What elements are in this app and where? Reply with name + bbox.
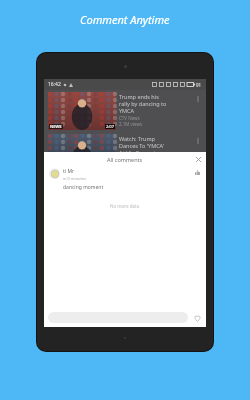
staticText: Trump ends his — [119, 93, 159, 100]
staticText: Watch: Trump — [119, 135, 155, 142]
staticText: NEWS — [50, 166, 62, 171]
staticText: YMCA — [119, 107, 135, 114]
button[interactable]: Like — [193, 168, 201, 176]
staticText: Dances To 'YMCA' — [119, 142, 164, 149]
staticText: No more data — [110, 203, 140, 209]
staticText: All comments — [107, 156, 143, 163]
staticText: rally by dancing to — [119, 100, 167, 107]
button[interactable]: Close — [194, 155, 202, 163]
button[interactable]: ti Mr — [49, 168, 201, 191]
button[interactable]: NEWS — [48, 134, 202, 172]
staticText: 16:42 — [48, 81, 61, 88]
button[interactable]: Favorite — [192, 313, 202, 323]
staticText: dancing moment — [63, 184, 104, 191]
button[interactable]: More options — [194, 92, 202, 106]
button[interactable]: More options — [194, 134, 202, 148]
staticText: 2.1M views — [119, 121, 143, 127]
staticText: NBC News — [119, 157, 141, 163]
button[interactable]: NEWS — [48, 92, 202, 130]
staticText: At His Campaign... — [119, 149, 167, 156]
staticText: 2:07 — [106, 124, 114, 129]
staticText: 91 — [196, 82, 202, 88]
staticText: NEWS — [50, 124, 62, 129]
staticText: CTV News — [119, 115, 140, 121]
staticText: Comment Anytime — [80, 12, 170, 27]
staticText: in 0 minutes — [63, 176, 87, 181]
staticText: ti Mr — [63, 168, 74, 175]
